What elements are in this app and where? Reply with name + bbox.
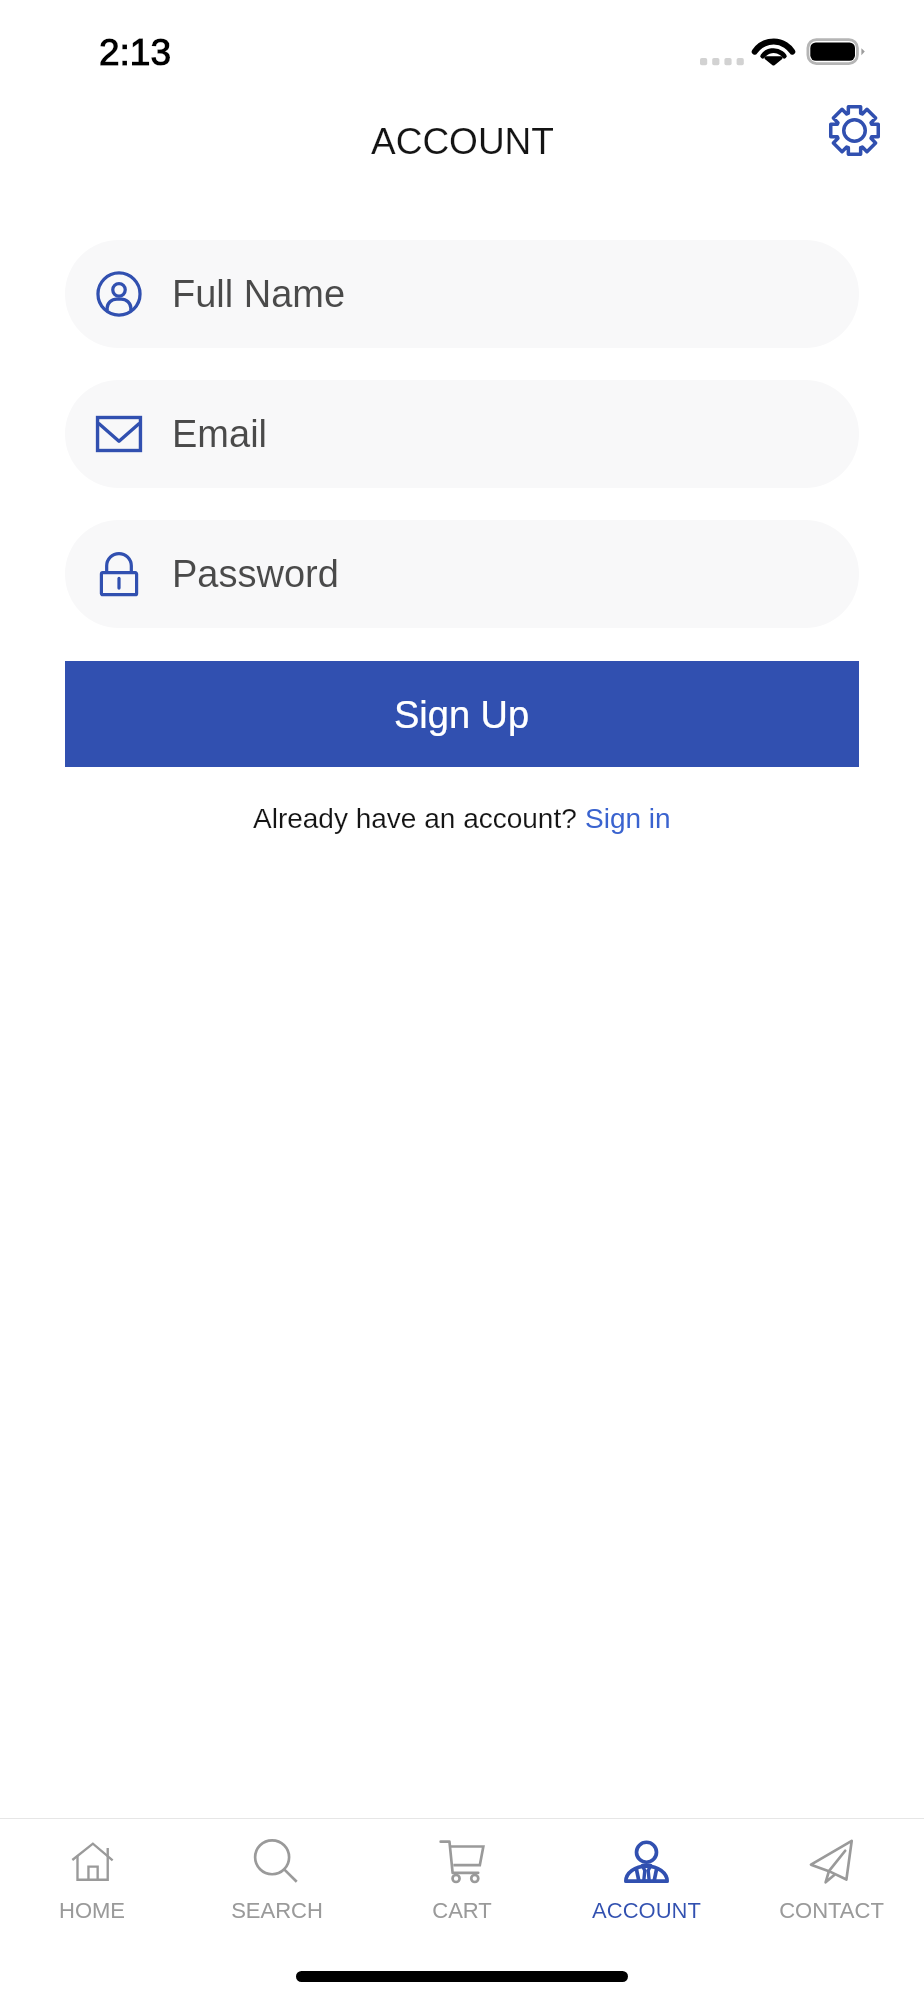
button[interactable]: CART: [369, 1819, 554, 1862]
button[interactable]: Sign in: [585, 803, 671, 834]
button[interactable]: SEARCH: [184, 1819, 369, 1862]
staticText: ACCOUNT: [371, 121, 554, 162]
button[interactable]: CONTACT: [739, 1819, 924, 1862]
staticText: Sign Up: [394, 694, 530, 736]
button[interactable]: Email: [65, 380, 859, 488]
staticText: ACCOUNT: [592, 1898, 701, 1923]
button[interactable]: Full Name: [65, 240, 859, 348]
staticText: SEARCH: [231, 1898, 323, 1923]
button[interactable]: ACCOUNT: [554, 1819, 739, 1862]
staticText: HOME: [59, 1898, 125, 1923]
button[interactable]: Sign Up: [65, 661, 859, 767]
staticText: Already have an account?: [253, 803, 585, 834]
staticText: Full Name: [172, 273, 346, 315]
staticText: Sign in: [585, 803, 671, 834]
button[interactable]: Settings: [819, 95, 890, 166]
button[interactable]: HOME: [0, 1819, 184, 1857]
staticText: Password: [172, 553, 339, 595]
staticText: 2:13: [99, 32, 172, 73]
staticText: Email: [172, 413, 268, 455]
staticText: CONTACT: [779, 1898, 884, 1923]
button[interactable]: Password: [65, 520, 859, 628]
staticText: CART: [432, 1898, 492, 1923]
